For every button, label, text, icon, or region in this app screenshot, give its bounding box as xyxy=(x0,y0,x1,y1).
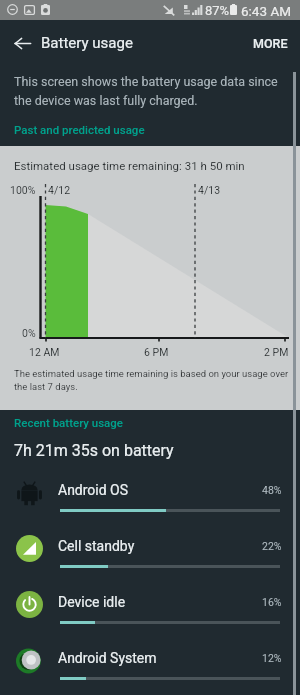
staticText: Estimated usage time remaining: 31 h 50 … xyxy=(14,159,245,172)
button[interactable]: MORE xyxy=(239,22,300,65)
staticText: 12 AM xyxy=(29,346,60,358)
staticText: Device idle xyxy=(58,594,126,610)
staticText: 22% xyxy=(262,540,282,552)
button[interactable]: Android OS xyxy=(0,470,300,526)
staticText: 0% xyxy=(22,327,36,339)
staticText: Android OS xyxy=(58,482,129,498)
staticText: 4/12 xyxy=(48,184,71,196)
staticText: The estimated usage time remaining is ba… xyxy=(14,368,295,393)
staticText: Android System xyxy=(58,650,157,666)
staticText: MORE xyxy=(253,36,288,51)
staticText: 87% xyxy=(205,3,230,18)
staticText: 7h 21m 35s on battery xyxy=(14,441,174,460)
staticText: 48% xyxy=(262,484,282,496)
button[interactable]: Back xyxy=(0,20,41,66)
staticText: Recent battery usage xyxy=(14,416,123,429)
button[interactable]: Device idle xyxy=(0,582,300,638)
staticText: 4/13 xyxy=(198,184,221,196)
staticText: 100% xyxy=(10,184,36,196)
button[interactable]: Android System xyxy=(0,638,300,694)
staticText: Past and predicted usage xyxy=(14,123,145,136)
staticText: 12% xyxy=(262,652,282,664)
button[interactable]: Cell standby xyxy=(0,526,300,582)
staticText: This screen shows the battery usage data… xyxy=(14,74,294,108)
staticText: 16% xyxy=(262,596,282,608)
staticText: 6 PM xyxy=(144,346,169,358)
staticText: Battery usage xyxy=(41,34,133,52)
staticText: Cell standby xyxy=(58,538,135,554)
staticText: 2 PM xyxy=(264,346,289,358)
staticText: 6:43 AM xyxy=(241,3,291,19)
